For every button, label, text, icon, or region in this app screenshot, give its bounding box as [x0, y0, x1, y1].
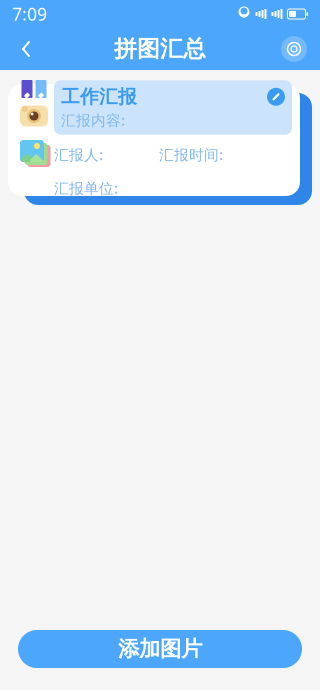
staticText: 汇报时间:: [159, 145, 223, 164]
staticText: 工作汇报: [61, 85, 137, 108]
button[interactable]: 返回: [6, 28, 46, 70]
button[interactable]: 添加图片: [18, 630, 302, 668]
button[interactable]: 工作汇报: [0, 70, 320, 204]
staticText: 7:09: [12, 2, 47, 25]
staticText: 汇报内容:: [61, 110, 125, 130]
staticText: 拼图汇总: [114, 35, 206, 63]
button[interactable]: 设置: [274, 28, 314, 70]
staticText: 汇报单位:: [54, 178, 118, 198]
staticText: 添加图片: [118, 636, 202, 662]
staticText: 汇报人:: [54, 145, 103, 164]
